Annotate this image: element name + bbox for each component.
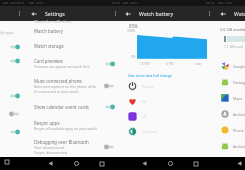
staticText: Google Play services bbox=[233, 64, 245, 69]
staticText: Watch battery bbox=[139, 10, 174, 17]
button[interactable]: Mute connected phone bbox=[26, 73, 123, 98]
button[interactable]: Android System bbox=[215, 138, 245, 154]
staticText: Mute interruptions on this phone while bbox=[34, 84, 97, 89]
button[interactable]: Watch storage bbox=[26, 38, 123, 53]
button[interactable]: Screen bbox=[120, 79, 217, 94]
button[interactable]: Navigate up bbox=[215, 6, 230, 21]
staticText: Use since last full charge bbox=[128, 73, 173, 78]
button[interactable]: Google Play services bbox=[215, 58, 245, 74]
staticText: Resync apps bbox=[34, 120, 60, 126]
button[interactable]: Debugging over Bluetooth bbox=[26, 135, 123, 159]
button[interactable]: Recent apps bbox=[2, 157, 12, 167]
staticText: it's connected to your watch bbox=[34, 89, 79, 94]
button[interactable]: Back bbox=[44, 157, 57, 170]
button[interactable]: Recent apps bbox=[95, 157, 108, 170]
staticText: Show calendar event cards bbox=[34, 104, 89, 110]
staticText: Target: disconnected bbox=[34, 150, 68, 155]
button[interactable]: UP bbox=[120, 109, 217, 124]
staticText: Host: disconnected bbox=[34, 145, 65, 150]
staticText: 0% bbox=[131, 55, 136, 59]
staticText: Previews can appear on watch face bbox=[34, 64, 90, 69]
staticText: 100% bbox=[127, 29, 136, 33]
staticText: Watch storage bbox=[34, 43, 64, 49]
button[interactable]: Navigate up bbox=[26, 6, 41, 21]
button[interactable]: Back bbox=[233, 157, 245, 170]
button[interactable]: Watch battery bbox=[26, 25, 123, 38]
staticText: Fit bbox=[142, 99, 147, 104]
staticText: Debugging over Bluetooth bbox=[34, 139, 89, 145]
staticText: Watch storage bbox=[234, 10, 245, 17]
button[interactable]: Phone bbox=[215, 122, 245, 138]
button[interactable]: Package installer bbox=[215, 74, 245, 90]
staticText: Mute connected phone bbox=[34, 78, 82, 84]
staticText: Vibrate for notifications bbox=[34, 19, 72, 23]
button[interactable]: Home bbox=[70, 157, 83, 170]
button[interactable]: Fit bbox=[120, 94, 217, 109]
staticText: ntly apps bbox=[0, 30, 14, 35]
button[interactable]: Navigate up bbox=[120, 6, 135, 21]
staticText: 12 PM bbox=[140, 62, 150, 66]
staticText: Maps bbox=[233, 96, 243, 101]
button[interactable]: Card previews bbox=[26, 53, 123, 73]
button[interactable]: Android Wear bbox=[215, 106, 245, 122]
staticText: Resync all available apps on your watch bbox=[34, 126, 97, 131]
staticText: Ambient bbox=[142, 129, 157, 134]
button[interactable]: Show calendar event cards bbox=[26, 98, 123, 115]
staticText: Android System bbox=[233, 144, 245, 149]
staticText: Phone bbox=[233, 128, 244, 133]
staticText: Watch battery bbox=[34, 28, 63, 34]
staticText: UP bbox=[142, 114, 147, 119]
button[interactable]: Maps bbox=[215, 90, 245, 106]
button[interactable]: More options bbox=[108, 6, 123, 21]
staticText: Card previews bbox=[34, 58, 63, 64]
staticText: 6 PM bbox=[166, 62, 174, 66]
button[interactable]: Back bbox=[138, 157, 151, 170]
staticText: 85% bbox=[129, 23, 138, 29]
button[interactable]: Home bbox=[164, 157, 177, 170]
button[interactable]: More options bbox=[12, 6, 27, 21]
button[interactable]: More options bbox=[202, 6, 217, 21]
button[interactable]: Ambient bbox=[120, 124, 217, 139]
staticText: Android Wear bbox=[233, 112, 245, 117]
staticText: 1.1 GB used bbox=[224, 44, 243, 49]
staticText: now bbox=[195, 62, 202, 66]
button[interactable]: Resync apps bbox=[26, 115, 123, 135]
button[interactable]: Recent apps bbox=[189, 157, 202, 170]
staticText: Screen bbox=[142, 84, 154, 89]
staticText: Settings bbox=[45, 10, 65, 17]
staticText: Package installer bbox=[233, 80, 245, 85]
staticText: 2.6 GB available bbox=[220, 27, 245, 32]
